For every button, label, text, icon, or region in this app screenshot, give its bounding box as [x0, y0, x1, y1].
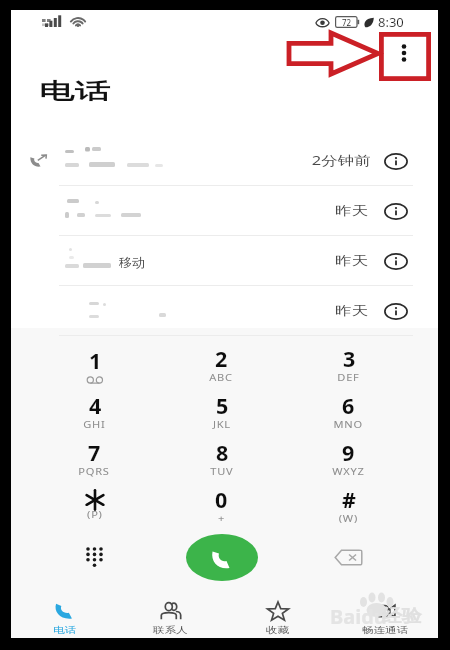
- staticText: WXYZ: [332, 466, 365, 478]
- staticText: PQRS: [78, 466, 111, 478]
- button[interactable]: 昨天: [11, 186, 438, 236]
- button[interactable]: 2: [158, 341, 285, 388]
- staticText: 畅连通话: [362, 624, 408, 635]
- staticText: Baidu: [330, 604, 388, 630]
- staticText: 昨天: [335, 253, 368, 269]
- staticText: #: [342, 485, 356, 514]
- staticText: 7: [88, 438, 101, 467]
- button[interactable]: 电话: [11, 600, 117, 638]
- staticText: 4: [89, 391, 102, 420]
- staticText: +: [218, 513, 226, 525]
- staticText: 72: [342, 17, 352, 28]
- staticText: (W): [339, 513, 358, 525]
- button[interactable]: 6: [285, 388, 412, 435]
- staticText: 9: [342, 438, 355, 467]
- button[interactable]: 0: [158, 482, 285, 529]
- button[interactable]: Keypad: [31, 529, 158, 585]
- staticText: 8:30: [378, 13, 404, 31]
- staticText: 8: [216, 438, 229, 467]
- button[interactable]: Call details: [381, 148, 411, 174]
- staticText: ABC: [209, 372, 234, 384]
- button[interactable]: 3: [285, 341, 412, 388]
- button[interactable]: 收藏: [224, 600, 331, 638]
- staticText: GHI: [83, 419, 107, 431]
- button[interactable]: Call: [186, 534, 258, 581]
- button[interactable]: 联系人: [117, 600, 224, 638]
- staticText: 2: [215, 344, 228, 373]
- staticText: 1: [89, 346, 102, 375]
- staticText: TUV: [210, 466, 234, 478]
- button[interactable]: Call details: [381, 248, 411, 274]
- staticText: 3: [343, 344, 356, 373]
- button[interactable]: (P): [31, 482, 158, 529]
- staticText: 昨天: [335, 203, 368, 219]
- staticText: JKL: [213, 419, 231, 431]
- staticText: 经验: [382, 605, 422, 628]
- button[interactable]: 2分钟前: [11, 136, 438, 186]
- staticText: 5: [216, 391, 229, 420]
- button[interactable]: 8: [158, 435, 285, 482]
- staticText: 电话: [53, 624, 76, 635]
- button[interactable]: Call details: [381, 298, 411, 324]
- button[interactable]: Delete: [285, 529, 412, 585]
- staticText: 联系人: [153, 624, 188, 635]
- staticText: DEF: [337, 372, 361, 384]
- button[interactable]: 5: [158, 388, 285, 435]
- button[interactable]: 9: [285, 435, 412, 482]
- staticText: MNO: [333, 419, 363, 431]
- button[interactable]: 畅连通话: [331, 600, 438, 638]
- button[interactable]: 昨天: [11, 286, 438, 336]
- button[interactable]: Call details: [381, 198, 411, 224]
- staticText: 收藏: [266, 624, 289, 635]
- button[interactable]: More options: [382, 31, 426, 75]
- staticText: 6: [342, 391, 355, 420]
- button[interactable]: 移动: [11, 236, 438, 286]
- staticText: (P): [87, 509, 104, 521]
- button[interactable]: 1: [31, 341, 158, 388]
- button[interactable]: 7: [31, 435, 158, 482]
- staticText: 0: [215, 485, 228, 514]
- staticText: 电话: [39, 78, 110, 106]
- button[interactable]: 4: [31, 388, 158, 435]
- staticText: 2分钟前: [312, 152, 371, 169]
- staticText: 昨天: [335, 303, 368, 319]
- button[interactable]: #: [285, 482, 412, 529]
- staticText: 移动: [119, 254, 145, 270]
